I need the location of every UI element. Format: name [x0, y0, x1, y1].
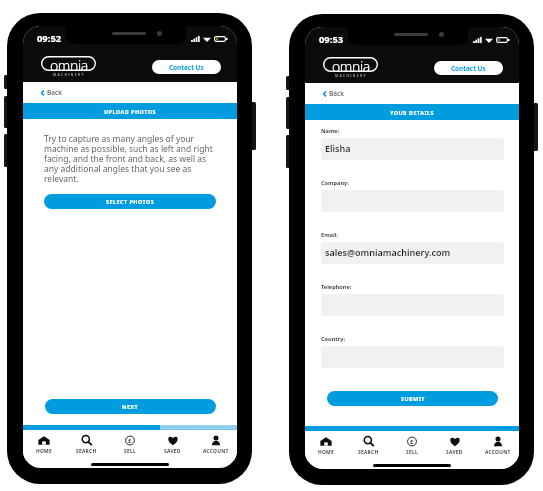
staticText: UPLOAD PHOTOS	[104, 108, 156, 115]
staticText: ACCOUNT	[485, 449, 511, 456]
staticText: YOUR DETAILS	[390, 109, 435, 116]
staticText: HOME	[36, 448, 52, 455]
button[interactable]: Contact Us	[434, 61, 503, 75]
staticText: sales@omniamachinery.com	[325, 246, 451, 258]
button[interactable]: SELECT PHOTOS	[44, 194, 216, 209]
button[interactable]: Elisha	[321, 138, 504, 160]
staticText: Name:	[321, 127, 340, 135]
button[interactable]: SAVED	[433, 431, 476, 461]
button[interactable]: HOME	[23, 430, 65, 460]
staticText: HOME	[318, 449, 334, 456]
staticText: Company:	[321, 179, 349, 187]
staticText: Contact Us	[169, 63, 204, 72]
staticText: SEARCH	[76, 448, 97, 455]
staticText: SAVED	[164, 448, 181, 455]
button[interactable]: £	[108, 430, 151, 460]
staticText: Contact Us	[451, 64, 486, 73]
button[interactable]: SEARCH	[347, 431, 390, 461]
staticText: Try to capture as many angles of your ma…	[44, 133, 218, 184]
staticText: Country:	[321, 335, 346, 343]
staticText: MACHINERY	[53, 73, 85, 77]
staticText: Telephone:	[321, 283, 352, 291]
staticText: NEXT	[122, 403, 139, 410]
staticText: omnia	[332, 57, 370, 72]
button[interactable]: SEARCH	[65, 430, 108, 460]
button[interactable]: ACCOUNT	[476, 431, 519, 461]
button[interactable]: sales@omniamachinery.com	[321, 242, 504, 264]
button[interactable]: Back	[305, 83, 519, 104]
staticText: SUBMIT	[401, 395, 425, 402]
staticText: £	[410, 438, 414, 446]
staticText: MACHINERY	[335, 74, 367, 78]
staticText: omnia	[50, 56, 88, 71]
button[interactable]: SAVED	[151, 430, 194, 460]
staticText: SEARCH	[358, 449, 379, 456]
staticText: Elisha	[325, 142, 351, 154]
staticText: SELL	[124, 448, 136, 455]
staticText: Back	[47, 88, 63, 97]
button[interactable]: Contact Us	[152, 60, 221, 74]
staticText: SAVED	[446, 449, 463, 456]
button[interactable]: Back	[23, 82, 237, 103]
staticText: £	[128, 437, 132, 445]
staticText: 09:52	[37, 32, 62, 45]
button[interactable]: NEXT	[45, 399, 216, 414]
staticText: ACCOUNT	[203, 448, 229, 455]
staticText: 09:53	[319, 33, 344, 46]
staticText: SELECT PHOTOS	[106, 198, 155, 205]
staticText: Email:	[321, 231, 338, 239]
button[interactable]: SUBMIT	[327, 391, 498, 406]
button[interactable]: HOME	[305, 431, 347, 461]
staticText: SELL	[406, 449, 418, 456]
staticText: Back	[329, 89, 345, 98]
button[interactable]: ACCOUNT	[194, 430, 237, 460]
button[interactable]: £	[390, 431, 433, 461]
